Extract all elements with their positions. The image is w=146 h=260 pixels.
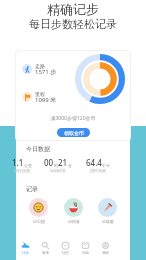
staticText: 领取金币: [64, 130, 84, 136]
button[interactable]: 我的: [96, 241, 114, 255]
button[interactable]: 走路: [22, 64, 44, 74]
button[interactable]: 里程: [22, 92, 44, 102]
staticText: 记饮食: [68, 219, 80, 224]
staticText: 记体重: [102, 219, 114, 224]
staticText: 满3000步得120金币: [0, 115, 146, 122]
button[interactable]: 发现: [36, 241, 54, 255]
staticText: 步行距离: [8, 168, 36, 173]
staticText: 1099 米: [35, 96, 57, 104]
button[interactable]: 社区: [56, 241, 74, 255]
staticText: 时: [54, 163, 58, 168]
staticText: 里程: [35, 91, 45, 97]
staticText: 1571 步: [35, 68, 57, 76]
staticText: 记录: [26, 185, 38, 193]
button[interactable]: 领取金币: [57, 128, 90, 137]
button[interactable]: 计步: [16, 241, 34, 255]
staticText: 消耗热量: [84, 168, 112, 173]
staticText: 我的: [102, 251, 109, 255]
staticText: 运动时长: [42, 168, 74, 173]
staticText: 00: [44, 157, 54, 168]
staticText: 走路: [35, 63, 45, 69]
staticText: 1.1: [12, 157, 24, 168]
staticText: 发现: [42, 251, 49, 255]
staticText: 分: [68, 163, 72, 168]
button[interactable]: 记体重: [95, 198, 120, 224]
staticText: 社区: [62, 251, 69, 255]
staticText: 公里: [24, 163, 32, 168]
staticText: 计步: [22, 251, 29, 255]
button[interactable]: 记心情: [26, 198, 51, 224]
staticText: 64.4: [86, 157, 102, 168]
staticText: 每日步数轻松记录: [0, 17, 146, 31]
staticText: 记心情: [33, 219, 45, 224]
staticText: 今日数据: [26, 145, 50, 153]
staticText: 千卡: [102, 163, 110, 168]
staticText: 消息: [82, 251, 89, 255]
staticText: 精确记步: [0, 1, 146, 17]
staticText: 21: [58, 157, 68, 168]
button[interactable]: 消息: [76, 241, 94, 255]
button[interactable]: 记饮食: [61, 198, 86, 224]
